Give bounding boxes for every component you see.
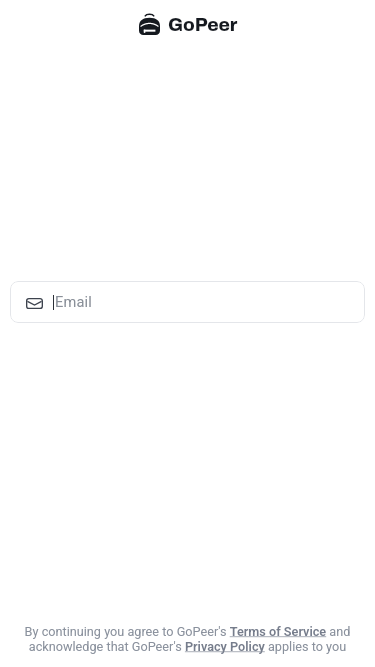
staticText: Email — [55, 293, 92, 310]
button[interactable]: Email — [10, 281, 365, 323]
other: GoPeer logo — [139, 14, 160, 35]
staticText: By continuing you agree to GoPeer's Term… — [14, 624, 361, 654]
staticText: GoPeer — [168, 15, 238, 35]
